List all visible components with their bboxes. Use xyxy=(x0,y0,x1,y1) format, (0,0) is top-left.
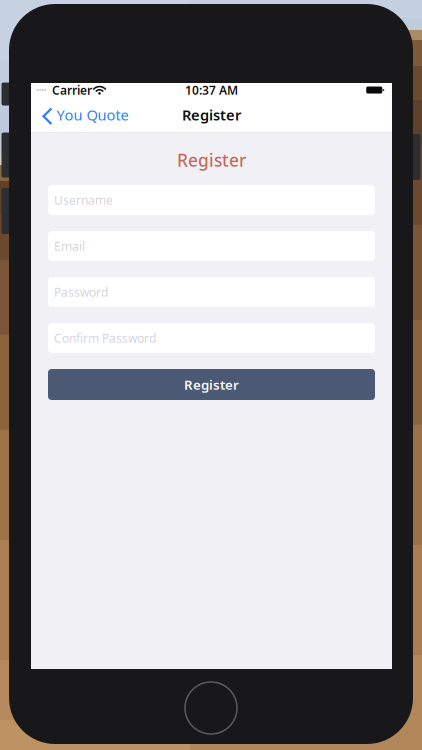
staticText: Confirm Password xyxy=(54,330,156,346)
staticText: Register xyxy=(182,105,241,124)
button[interactable]: Register xyxy=(48,369,375,400)
staticText: Register xyxy=(184,376,239,393)
button[interactable]: Email xyxy=(48,231,375,261)
button[interactable]: Confirm Password xyxy=(48,323,375,353)
staticText: Password xyxy=(54,284,108,300)
staticText: Register xyxy=(177,148,246,171)
button[interactable]: You Quote xyxy=(31,97,138,132)
button[interactable]: Password xyxy=(48,277,375,307)
staticText: Username xyxy=(54,192,113,208)
staticText: 10:37 AM xyxy=(185,82,238,98)
staticText: Email xyxy=(54,238,85,254)
button[interactable]: Username xyxy=(48,185,375,215)
staticText: Carrier xyxy=(52,82,92,98)
staticText: You Quote xyxy=(56,105,128,124)
